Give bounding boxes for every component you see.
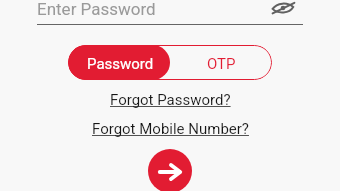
button[interactable]: Forgot Password? — [0, 90, 340, 110]
button[interactable]: Password — [68, 45, 170, 80]
staticText: Password — [87, 55, 154, 73]
button[interactable]: Show password — [269, 0, 297, 18]
button[interactable]: Continue — [148, 149, 192, 191]
staticText: Enter Password — [37, 0, 156, 19]
button[interactable]: OTP — [170, 45, 272, 80]
button[interactable]: Forgot Mobile Number? — [0, 119, 340, 139]
staticText: Forgot Mobile Number? — [92, 120, 249, 138]
staticText: OTP — [207, 55, 236, 73]
staticText: Forgot Password? — [110, 91, 231, 109]
